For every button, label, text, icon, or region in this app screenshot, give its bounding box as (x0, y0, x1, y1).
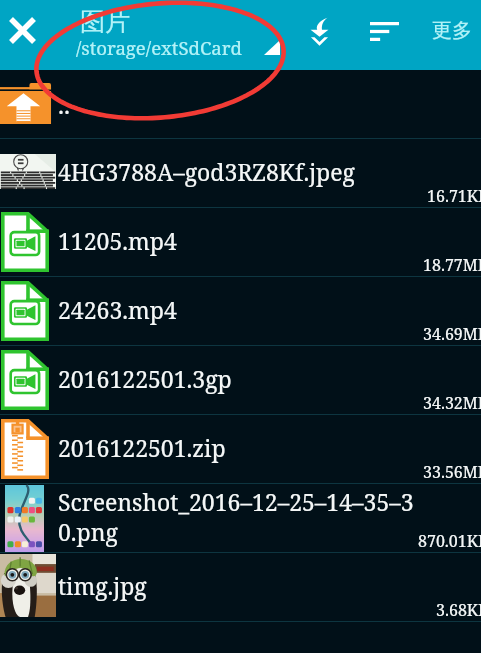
button[interactable]: Sort (353, 0, 413, 70)
button[interactable]: 24263.mp4 (0, 277, 481, 345)
staticText: 18.77MB (423, 254, 481, 276)
staticText: .. (58, 88, 70, 121)
staticText: 34.69MB (423, 323, 481, 345)
button[interactable]: timg.jpg (0, 553, 481, 621)
staticText: 更多 (432, 18, 472, 43)
staticText: 图片 (80, 6, 130, 37)
staticText: Screenshot_2016–⁠12–⁠25–⁠14–⁠35–⁠30.png (58, 486, 420, 547)
staticText: 4HG3788A–god3RZ8Kf.jpeg (58, 156, 420, 187)
staticText: 34.32MB (423, 392, 481, 414)
button[interactable]: 4HG3788A–god3RZ8Kf.jpeg (0, 139, 481, 207)
button[interactable]: 2016122501.3gp (0, 346, 481, 414)
staticText: 24263.mp4 (58, 294, 420, 325)
staticText: 2016122501.zip (58, 432, 420, 463)
button[interactable]: Screenshot_2016–⁠12–⁠25–⁠14–⁠35–⁠30.png (0, 484, 481, 552)
staticText: 3.68KB (436, 599, 481, 621)
button[interactable]: 更多 (413, 0, 481, 70)
staticText: /storage/extSdCard (76, 35, 243, 60)
button[interactable]: .. (0, 70, 481, 138)
button[interactable]: 11205.mp4 (0, 208, 481, 276)
button[interactable]: 2016122501.zip (0, 415, 481, 483)
button[interactable]: Close (0, 0, 62, 70)
button[interactable]: Download (291, 0, 347, 70)
staticText: 16.71KB (427, 185, 481, 207)
staticText: 2016122501.3gp (58, 363, 420, 394)
staticText: 11205.mp4 (58, 225, 420, 256)
staticText: 33.56MB (423, 461, 481, 483)
staticText: 870.01KB (418, 530, 481, 552)
staticText: timg.jpg (58, 570, 420, 601)
